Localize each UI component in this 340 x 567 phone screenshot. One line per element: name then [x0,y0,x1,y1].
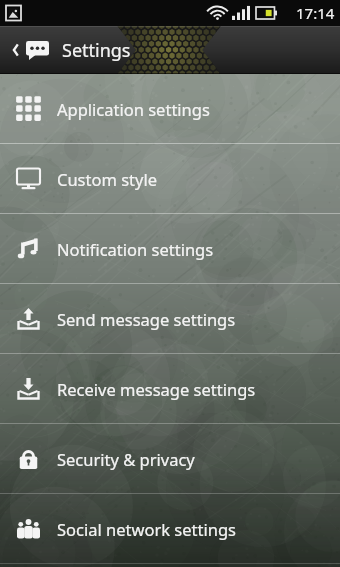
staticText: Application settings [57,98,210,120]
staticText: Receive message settings [57,378,256,400]
staticText: Security & privacy [57,448,195,470]
other: Back [8,40,22,60]
staticText: 17:14 [296,3,335,23]
staticText: Custom style [57,168,158,190]
button[interactable]: Back [0,26,340,74]
button[interactable]: Send message settings [0,284,340,353]
button[interactable]: Security & privacy [0,424,340,493]
button[interactable]: Custom style [0,144,340,213]
button[interactable]: Receive message settings [0,354,340,423]
button[interactable]: Application settings [0,74,340,143]
staticText: Settings [62,38,131,63]
button[interactable]: Social network settings [0,494,340,563]
staticText: Notification settings [57,238,214,260]
button[interactable]: Notification settings [0,214,340,283]
staticText: Social network settings [57,518,236,540]
staticText: Send message settings [57,308,236,330]
